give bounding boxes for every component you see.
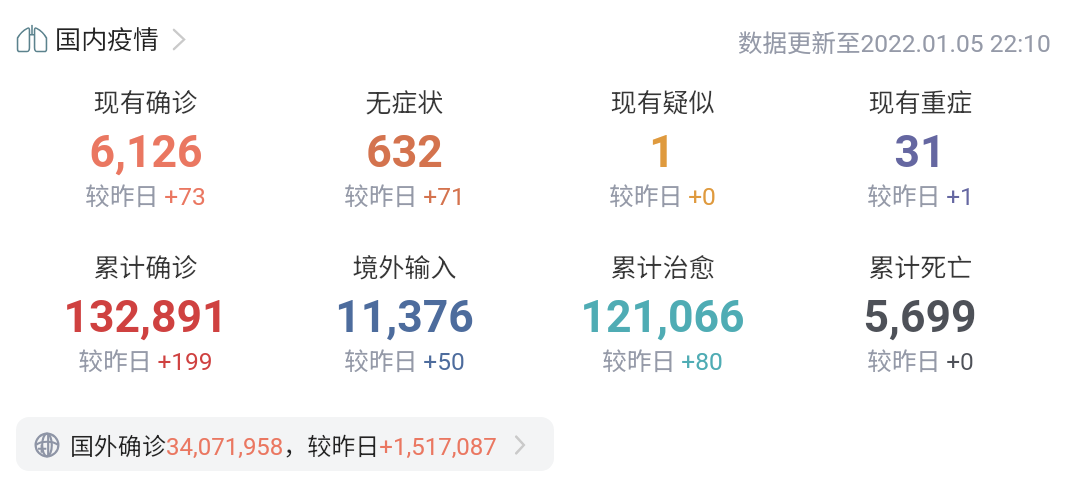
staticText: 11,376 [335, 291, 474, 343]
staticText: 现有确诊 [93, 82, 198, 120]
staticText: 现有重症 [868, 82, 973, 120]
staticText: 较昨日 +0 [609, 177, 716, 212]
staticText: 累计死亡 [868, 247, 973, 285]
staticText: 较昨日 +80 [602, 342, 723, 377]
staticText: 累计确诊 [93, 247, 198, 285]
button[interactable]: 现有重症 [791, 82, 1049, 212]
staticText: 境外输入 [352, 247, 457, 285]
button[interactable]: 累计死亡 [791, 247, 1049, 377]
staticText: 较昨日 +0 [867, 342, 974, 377]
button[interactable]: 累计确诊 [16, 247, 275, 377]
button[interactable]: Global cases [16, 417, 554, 471]
staticText: 5,699 [863, 291, 977, 343]
staticText: 较昨日 +199 [78, 342, 213, 377]
staticText: 较昨日 +71 [344, 177, 465, 212]
staticText: 国内疫情 [55, 19, 160, 57]
staticText: 数据更新至2022.01.05 22:10 [738, 24, 1051, 59]
button[interactable]: 现有确诊 [16, 82, 275, 212]
staticText: 632 [366, 126, 443, 178]
staticText: 132,891 [63, 291, 228, 343]
other: Global cases [34, 432, 60, 458]
button[interactable]: 现有疑似 [533, 82, 791, 212]
button[interactable]: 境外输入 [275, 247, 533, 377]
staticText: 6,126 [89, 126, 203, 178]
button[interactable]: Domestic epidemic [17, 19, 187, 57]
staticText: 121,066 [580, 291, 745, 343]
other: Domestic epidemic [17, 24, 47, 52]
staticText: 累计治愈 [610, 247, 715, 285]
staticText: 较昨日 +73 [85, 177, 206, 212]
staticText: 1 [649, 126, 675, 178]
staticText: 31 [894, 126, 946, 178]
button[interactable]: 累计治愈 [533, 247, 791, 377]
staticText: 较昨日 +50 [344, 342, 465, 377]
button[interactable]: 无症状 [275, 82, 533, 212]
staticText: 无症状 [365, 82, 444, 120]
staticText: 现有疑似 [610, 82, 715, 120]
staticText: 较昨日 +1 [867, 177, 974, 212]
staticText: 国外确诊34,071,958，较昨日+1,517,087 [70, 427, 497, 462]
